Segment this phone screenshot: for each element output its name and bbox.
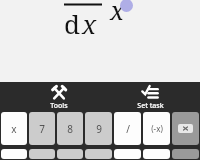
button[interactable]: / — [114, 112, 141, 145]
staticText: Tools — [50, 101, 68, 111]
button[interactable] — [29, 149, 55, 159]
button[interactable] — [143, 149, 170, 159]
staticText: (-x) — [151, 123, 163, 134]
button[interactable]: (-x) — [143, 112, 170, 145]
other: Set task — [142, 85, 158, 101]
button[interactable] — [114, 149, 141, 159]
button[interactable]: Tools — [33, 83, 85, 111]
button[interactable] — [172, 149, 199, 159]
staticText: / — [126, 122, 130, 136]
other: Tools — [51, 85, 67, 101]
staticText: 8 — [67, 122, 73, 136]
staticText: Set task — [137, 101, 164, 111]
staticText: x — [11, 122, 17, 136]
button[interactable]: Backspace — [172, 112, 199, 145]
staticText: x — [110, 0, 125, 27]
button[interactable]: Set task — [124, 83, 176, 111]
button[interactable] — [57, 149, 83, 159]
button[interactable]: 7 — [29, 112, 55, 145]
staticText: x — [82, 6, 97, 41]
staticText: d — [64, 6, 80, 41]
button[interactable] — [85, 149, 112, 159]
button[interactable]: 9 — [85, 112, 112, 145]
button[interactable] — [1, 149, 27, 159]
staticText: 9 — [96, 122, 102, 136]
button[interactable]: x — [1, 112, 27, 145]
staticText: 7 — [39, 122, 45, 136]
button[interactable]: 8 — [57, 112, 83, 145]
